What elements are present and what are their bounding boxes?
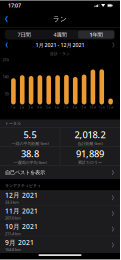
staticText: 合計距離 (km)	[78, 141, 103, 146]
staticText: 1月	[11, 106, 16, 109]
staticText: 一週間の平均 (km)	[13, 160, 46, 165]
staticText: 12月	[107, 106, 114, 109]
staticText: 12月 2021	[5, 191, 38, 200]
staticText: 140	[2, 74, 8, 79]
staticText: 11月	[98, 106, 105, 109]
staticText: 10月	[89, 106, 96, 109]
button[interactable]: 11月 2021	[0, 206, 120, 221]
staticText: 38.8	[21, 147, 39, 160]
staticText: トータル	[5, 121, 21, 126]
staticText: 5月	[46, 106, 51, 109]
staticText: 2,018.2	[75, 128, 106, 141]
button[interactable]: 12月 2021	[0, 190, 120, 206]
button[interactable]: Next period	[108, 40, 118, 50]
staticText: 3月	[29, 106, 34, 109]
staticText: 210	[2, 57, 8, 62]
staticText: 17:07	[8, 2, 21, 9]
staticText: 一回の平均距離 (km)	[11, 141, 48, 146]
staticText: 1月 2021 - 12月 2021	[35, 41, 84, 49]
staticText: 累計カロリー	[78, 160, 102, 165]
staticText: 33.3 km	[5, 199, 19, 205]
staticText: 7月	[64, 106, 69, 109]
button[interactable]: 9月 2021	[0, 237, 120, 253]
staticText: 2月	[20, 106, 25, 109]
staticText: 207.0 km	[5, 215, 21, 220]
staticText: 4週間	[53, 31, 66, 38]
staticText: 合計・ラン	[50, 51, 70, 56]
staticText: 6月	[55, 106, 60, 109]
button[interactable]: 10月 2021	[0, 221, 120, 237]
staticText: 9月 2021	[5, 238, 34, 247]
button[interactable]: Back	[2, 12, 11, 25]
staticText: 4月	[37, 106, 42, 109]
button[interactable]: 4週間	[42, 31, 78, 39]
staticText: 5.5	[23, 128, 36, 141]
staticText: 164.8 km	[5, 247, 21, 252]
staticText: 10月 2021	[5, 222, 38, 231]
staticText: 8月	[73, 106, 78, 109]
staticText: 91,889	[76, 147, 104, 160]
staticText: 1年間	[90, 31, 103, 38]
staticText: 70	[4, 91, 8, 96]
button[interactable]: 自己ベストを表示	[0, 166, 120, 179]
staticText: ラン	[53, 15, 67, 23]
button[interactable]: 1年間	[78, 31, 114, 39]
staticText: 211.4 km	[5, 231, 21, 236]
staticText: 9月	[82, 106, 87, 109]
staticText: 11月 2021	[5, 206, 38, 215]
button[interactable]: Previous period	[1, 40, 12, 50]
staticText: ランアクティビティ	[5, 183, 41, 188]
staticText: 自己ベストを表示	[5, 169, 45, 176]
staticText: 7日間	[17, 31, 30, 38]
button[interactable]: 7日間	[6, 31, 42, 39]
